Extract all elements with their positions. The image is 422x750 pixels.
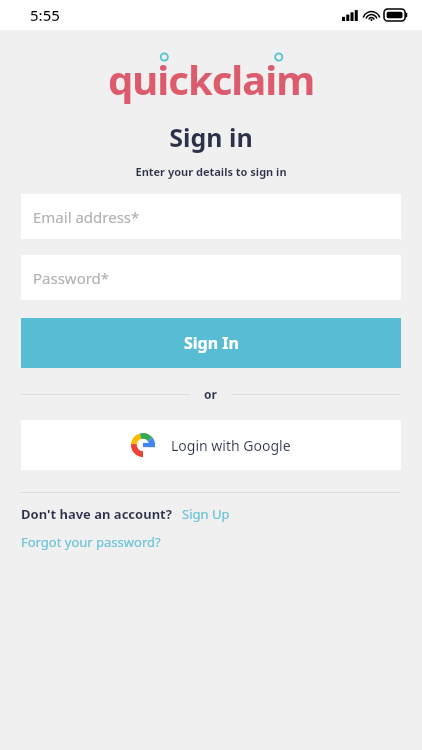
button[interactable]: Forgot your password? [21, 533, 161, 551]
staticText: Enter your details to sign in [0, 164, 422, 179]
other: Google logo [131, 433, 155, 457]
staticText: Password* [33, 268, 110, 288]
staticText: Forgot your password? [21, 533, 161, 551]
staticText: Login with Google [171, 436, 291, 455]
staticText: 5:55 [30, 5, 60, 25]
staticText: Sign Up [182, 505, 230, 523]
staticText: Sign In [184, 332, 239, 354]
button[interactable]: Sign In [21, 318, 401, 368]
button[interactable]: Password* [21, 255, 401, 300]
staticText: quickclaim [108, 52, 315, 106]
staticText: Email address* [33, 207, 140, 227]
staticText: Don't have an account? [21, 505, 172, 523]
staticText: Sign in [0, 120, 422, 154]
button[interactable]: Sign Up [182, 505, 230, 523]
button[interactable]: Email address* [21, 194, 401, 239]
button[interactable]: Google logo [21, 420, 401, 470]
staticText: or [204, 386, 217, 402]
